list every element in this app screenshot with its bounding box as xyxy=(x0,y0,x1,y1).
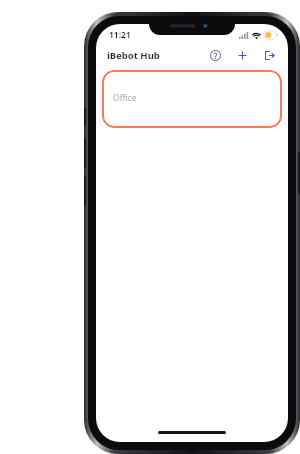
button[interactable]: Add xyxy=(232,45,252,65)
staticText: iBebot Hub xyxy=(107,49,160,62)
button[interactable]: Log out xyxy=(259,45,279,65)
button[interactable]: Office xyxy=(102,70,282,128)
staticText: 11:21 xyxy=(109,29,131,41)
button[interactable]: Help xyxy=(205,45,225,65)
staticText: Office xyxy=(113,92,137,104)
